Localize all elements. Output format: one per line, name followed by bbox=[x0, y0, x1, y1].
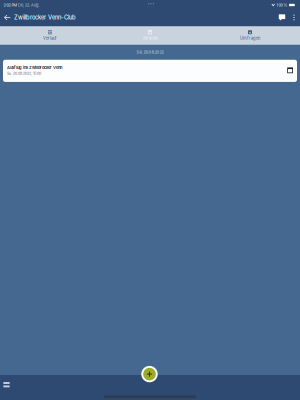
button[interactable]: Ausflug ins Zwillbrocker Venn bbox=[3, 60, 297, 82]
button[interactable]: Add bbox=[140, 365, 158, 383]
staticText: 2:02 PM bbox=[3, 3, 16, 7]
staticText: Umfragen bbox=[240, 36, 260, 41]
button[interactable]: Termine bbox=[100, 26, 200, 44]
staticText: Verlauf bbox=[43, 36, 57, 41]
button[interactable]: More options bbox=[289, 12, 299, 23]
staticText: Ausflug ins Zwillbrocker Venn bbox=[7, 65, 62, 70]
button[interactable]: Chat bbox=[275, 12, 289, 23]
staticText: 100 % bbox=[276, 3, 287, 7]
button[interactable]: Verlauf bbox=[0, 26, 100, 44]
staticText: Termine bbox=[142, 36, 157, 41]
button[interactable]: Umfragen bbox=[200, 26, 300, 44]
staticText: Sa. 20.08.2022 bbox=[136, 50, 163, 54]
button[interactable]: Back bbox=[0, 12, 14, 23]
staticText: Do, 22. Aug. bbox=[18, 3, 39, 7]
staticText: Zwillbrocker Venn-Club bbox=[14, 14, 76, 21]
button[interactable]: Recents bbox=[0, 379, 13, 390]
staticText: Sa. 20.08.2022, 15:00 bbox=[7, 71, 41, 76]
